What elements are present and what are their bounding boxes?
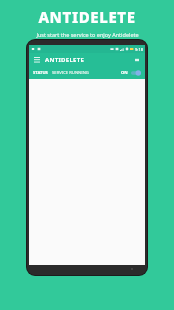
staticText: SERVICE RUNNING: [52, 70, 89, 76]
staticText: STATUS: [33, 70, 48, 76]
staticText: ANTIDELETE: [45, 56, 85, 64]
staticText: ON: [121, 70, 128, 76]
staticText: 9:18: [135, 47, 143, 52]
staticText: Just start the service to enjoy Antidele…: [36, 31, 139, 38]
staticText: ANTIDELETE: [38, 7, 136, 27]
button[interactable]: STATUS: [29, 67, 145, 79]
button[interactable]: More options: [133, 56, 141, 64]
button[interactable]: Service toggle, on: [131, 69, 141, 77]
button[interactable]: Open navigation menu: [33, 56, 41, 64]
